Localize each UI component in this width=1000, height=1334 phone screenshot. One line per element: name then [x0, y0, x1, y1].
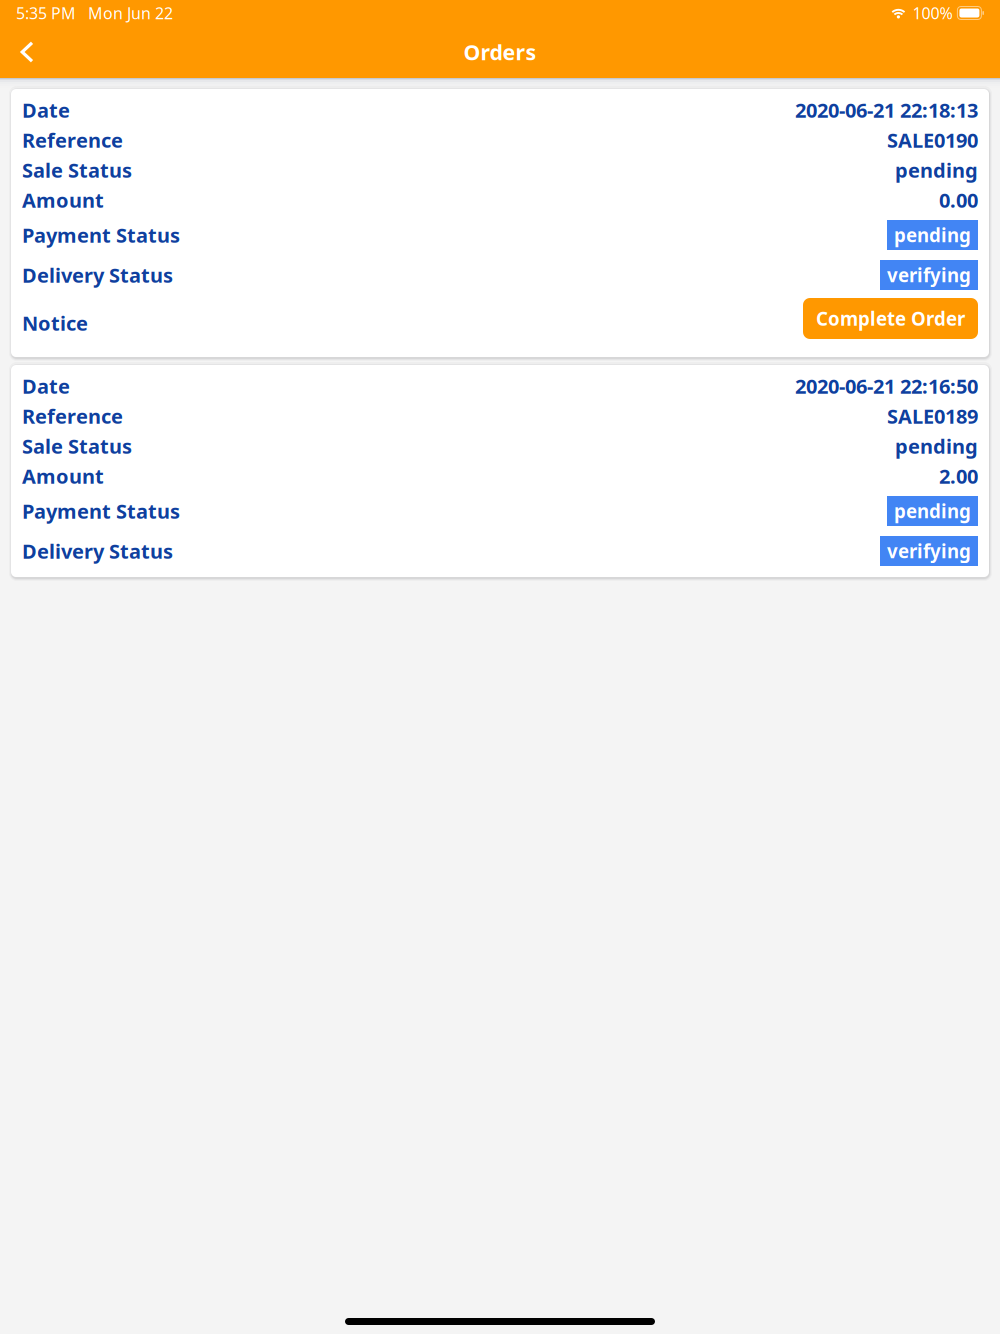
staticText: pending	[895, 433, 978, 459]
staticText: Mon Jun 22	[88, 2, 173, 24]
staticText: 2020-06-21 22:18:13	[795, 97, 978, 123]
button[interactable]: Complete Order	[803, 298, 978, 348]
staticText: Payment Status	[22, 498, 180, 524]
staticText: Amount	[22, 463, 104, 489]
staticText: pending	[894, 223, 971, 247]
staticText: SALE0190	[887, 127, 978, 153]
staticText: pending	[894, 499, 971, 523]
staticText: Delivery Status	[22, 262, 173, 288]
staticText: Sale Status	[22, 157, 132, 183]
staticText: 5:35 PM	[16, 2, 76, 24]
staticText: Reference	[22, 127, 123, 153]
staticText: Date	[22, 97, 70, 123]
staticText: SALE0189	[887, 403, 978, 429]
staticText: Amount	[22, 187, 104, 213]
staticText: 2020-06-21 22:16:50	[795, 373, 978, 399]
staticText: Notice	[22, 310, 88, 336]
staticText: 0.00	[939, 187, 978, 213]
staticText: verifying	[887, 539, 971, 563]
staticText: Reference	[22, 403, 123, 429]
staticText: Payment Status	[22, 222, 180, 248]
staticText: pending	[895, 157, 978, 183]
staticText: Orders	[463, 38, 536, 66]
staticText: Sale Status	[22, 433, 132, 459]
staticText: 100%	[912, 2, 952, 24]
staticText: Complete Order	[816, 306, 965, 331]
staticText: Delivery Status	[22, 538, 173, 564]
staticText: 2.00	[939, 463, 978, 489]
button[interactable]: Back	[0, 29, 48, 75]
staticText: Date	[22, 373, 70, 399]
staticText: verifying	[887, 263, 971, 287]
